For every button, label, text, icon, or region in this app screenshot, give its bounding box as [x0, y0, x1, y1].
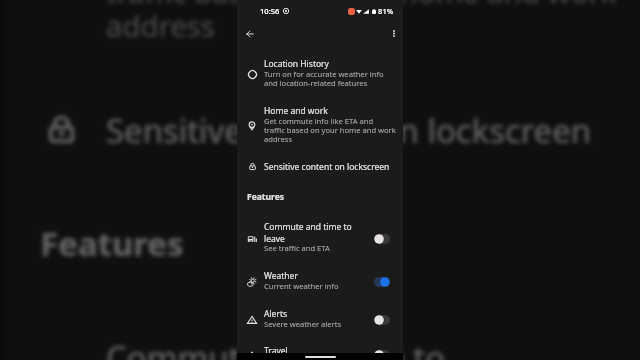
- staticText: Current weather info: [264, 281, 339, 291]
- button[interactable]: Location History: [237, 58, 403, 90]
- button[interactable]: Off: [374, 234, 390, 244]
- staticText: Features: [247, 191, 285, 203]
- staticText: Plan your trips: [264, 356, 316, 360]
- button[interactable]: Sensitive content on lockscreen: [1, 109, 640, 150]
- staticText: Sensitive content on lockscreen: [106, 109, 594, 150]
- button[interactable]: Weather: [237, 270, 403, 294]
- staticText: Turn on for accurate weather info and lo…: [264, 69, 384, 88]
- button[interactable]: Home and work: [237, 105, 403, 146]
- button[interactable]: Off: [374, 350, 390, 360]
- button[interactable]: Alerts: [237, 308, 403, 332]
- staticText: Alerts: [264, 308, 288, 320]
- button[interactable]: Commute and time to leave: [1, 336, 640, 360]
- staticText: Severe weather alerts: [264, 319, 342, 329]
- button[interactable]: Off: [374, 315, 390, 325]
- button[interactable]: Travel: [237, 345, 403, 360]
- button[interactable]: Home and work: [1, 0, 640, 52]
- staticText: Sensitive content on lockscreen: [264, 161, 390, 172]
- staticText: Location History: [264, 58, 329, 70]
- button[interactable]: Back: [241, 25, 258, 42]
- button[interactable]: Commute and time to leave: [237, 221, 403, 257]
- staticText: See traffic and ETA: [264, 243, 330, 253]
- staticText: 81%: [378, 6, 394, 16]
- staticText: Home and work: [264, 105, 328, 117]
- button[interactable]: Sensitive content on lockscreen: [237, 161, 403, 172]
- staticText: Commute and time to leave: [106, 336, 454, 360]
- staticText: Commute and time to leave: [264, 221, 354, 244]
- staticText: Travel: [264, 345, 288, 357]
- staticText: 10:56: [260, 6, 280, 16]
- staticText: Weather: [264, 270, 298, 282]
- staticText: Get commute info like ETA and traffic ba…: [106, 0, 617, 44]
- button[interactable]: More options: [385, 25, 402, 42]
- staticText: Get commute info like ETA and traffic ba…: [264, 116, 396, 144]
- button[interactable]: On: [374, 277, 390, 287]
- staticText: Features: [40, 222, 187, 267]
